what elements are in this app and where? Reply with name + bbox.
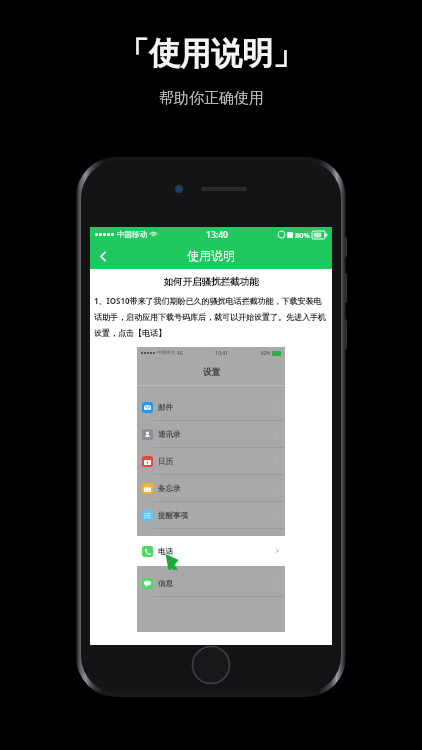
button[interactable]: 电话 (137, 536, 285, 566)
button[interactable]: 通讯录 (137, 421, 285, 448)
staticText: 提醒事项 (158, 511, 188, 520)
staticText: 80% (295, 230, 310, 240)
button[interactable]: 日历 (137, 448, 285, 475)
staticText: 帮助你正确使用 (159, 89, 264, 108)
staticText: 中国移动 (157, 350, 175, 356)
staticText: 1、IOS10带来了我们期盼已久的骚扰电话拦截功能，下载安装电话助手，启动应用下… (94, 295, 328, 338)
button[interactable]: 信息 (137, 570, 285, 597)
staticText: 通讯录 (158, 430, 181, 439)
staticText: 13:40 (206, 229, 228, 241)
button[interactable]: 提醒事项 (137, 502, 285, 529)
button[interactable]: 邮件 (137, 394, 285, 421)
staticText: 92% (261, 350, 270, 356)
staticText: 电话 (158, 547, 173, 556)
staticText: 邮件 (158, 403, 173, 412)
staticText: 10:41 (215, 350, 228, 357)
staticText: 设置 (203, 367, 220, 378)
staticText: 中国移动 (117, 230, 147, 239)
staticText: 「使用说明」 (118, 34, 304, 73)
staticText: 4G (177, 350, 183, 356)
button[interactable]: 备忘录 (137, 475, 285, 502)
staticText: 备忘录 (158, 484, 181, 493)
staticText: 信息 (158, 579, 173, 588)
staticText: 日历 (158, 457, 173, 466)
button[interactable]: Back (90, 243, 116, 269)
staticText: 使用说明 (187, 248, 235, 263)
staticText: 如何开启骚扰拦截功能 (90, 276, 332, 288)
